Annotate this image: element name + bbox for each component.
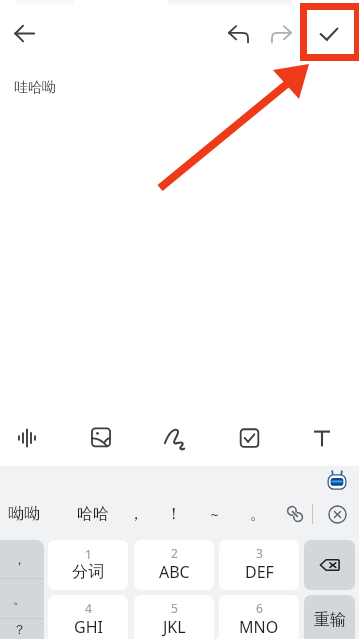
staticText: ？	[13, 621, 26, 637]
staticText: 2	[171, 545, 178, 561]
staticText: 。	[13, 591, 26, 607]
staticText: JKL	[163, 616, 186, 638]
staticText: 5	[171, 600, 178, 616]
staticText: ABC	[159, 561, 190, 583]
button[interactable]: Insert image	[85, 422, 117, 454]
button[interactable]: ！	[164, 494, 184, 534]
staticText: 哇哈呦	[14, 79, 56, 97]
staticText: 4	[85, 600, 92, 616]
staticText: 3	[256, 545, 263, 561]
button[interactable]: Handwriting	[159, 422, 191, 454]
staticText: 重输	[314, 610, 346, 630]
button[interactable]: 。	[0, 579, 44, 619]
button[interactable]: 1	[48, 540, 128, 590]
staticText: ，	[13, 551, 26, 567]
button[interactable]: Clipboard	[280, 499, 310, 529]
button[interactable]: Voice input	[11, 422, 43, 454]
staticText: 6	[256, 600, 263, 616]
button[interactable]: 4	[48, 595, 128, 639]
button[interactable]: 6	[219, 595, 299, 639]
button[interactable]: Redo	[265, 17, 297, 49]
staticText: MNO	[239, 616, 279, 638]
staticText: ~	[210, 505, 219, 524]
button[interactable]: Back	[8, 17, 40, 49]
button[interactable]: Backspace	[304, 540, 355, 590]
staticText: 。	[250, 504, 266, 524]
staticText: ，	[128, 504, 144, 524]
button[interactable]: 。	[248, 494, 268, 534]
button[interactable]: Assistant	[321, 464, 353, 496]
button[interactable]: 2	[134, 540, 214, 590]
staticText: 分词	[72, 562, 104, 582]
button[interactable]: 3	[219, 540, 299, 590]
button[interactable]: Checklist	[233, 422, 265, 454]
button[interactable]: ，	[0, 540, 44, 578]
button[interactable]: 呦呦	[4, 494, 43, 534]
button[interactable]: ？	[0, 619, 44, 639]
button[interactable]: ~	[204, 494, 224, 534]
staticText: DEF	[245, 561, 274, 583]
button[interactable]: ，	[126, 494, 146, 534]
button[interactable]: Done	[312, 16, 346, 50]
staticText: ！	[166, 504, 182, 524]
button[interactable]: 重输	[304, 595, 355, 639]
button[interactable]: Undo	[223, 17, 255, 49]
staticText: 1	[85, 546, 92, 562]
button[interactable]: 5	[134, 595, 214, 639]
staticText: GHI	[74, 616, 103, 638]
button[interactable]: 哈哈	[73, 494, 112, 534]
button[interactable]: Close keyboard	[322, 499, 352, 529]
button[interactable]: Text format	[306, 422, 338, 454]
staticText: 呦呦	[8, 504, 40, 524]
staticText: 哈哈	[77, 504, 109, 524]
